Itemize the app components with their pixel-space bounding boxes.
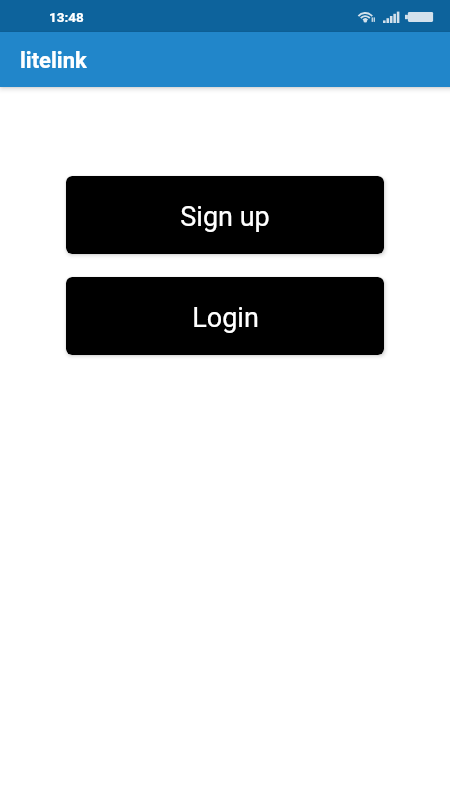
staticText: litelink	[20, 48, 87, 74]
staticText: Sign up	[180, 201, 270, 233]
staticText: Login	[192, 302, 259, 334]
staticText: 13:48	[49, 9, 84, 25]
button[interactable]: Login	[66, 277, 384, 355]
button[interactable]: Sign up	[66, 176, 384, 254]
